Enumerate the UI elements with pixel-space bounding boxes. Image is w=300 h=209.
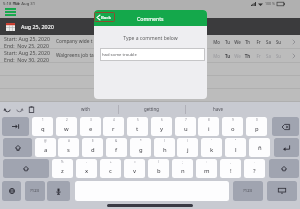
staticText: " <box>235 139 237 143</box>
button[interactable]: 3 <box>80 117 101 136</box>
staticText: n <box>181 167 185 175</box>
staticText: Su <box>274 39 283 45</box>
staticText: j <box>187 146 189 154</box>
staticText: Fr <box>254 39 263 45</box>
staticText: ? <box>253 167 256 175</box>
staticText: Tue Aug 31 <box>13 1 36 7</box>
button[interactable]: = <box>124 159 145 178</box>
button[interactable]: : <box>196 159 217 178</box>
button[interactable]: * <box>130 138 151 157</box>
staticText: Back <box>101 14 111 20</box>
staticText: 0 <box>256 118 258 122</box>
button[interactable]: # <box>58 138 79 157</box>
button[interactable]: ?123 <box>25 181 45 201</box>
staticText: Th <box>243 39 252 45</box>
button[interactable]: 9 <box>222 117 243 136</box>
button[interactable]: Mo <box>207 35 300 48</box>
button[interactable]: Change language <box>2 181 21 201</box>
button[interactable]: Enter <box>274 138 299 157</box>
staticText: $ <box>92 139 94 143</box>
staticText: e <box>89 125 93 133</box>
staticText: ) <box>187 139 188 143</box>
button[interactable]: had some trouble <box>100 48 205 61</box>
staticText: % <box>61 160 64 164</box>
button[interactable]: Shift <box>3 159 49 178</box>
staticText: Mo <box>212 53 221 59</box>
staticText: Start: Aug 25, 2020 <box>4 35 50 42</box>
staticText: We <box>233 39 242 45</box>
button[interactable]: 0 <box>246 117 267 136</box>
staticText: Sa <box>264 39 273 45</box>
button[interactable]: Shift <box>269 159 299 178</box>
button[interactable]: 1 <box>32 117 53 136</box>
staticText: = <box>134 160 136 164</box>
staticText: a <box>44 146 48 154</box>
button[interactable]: Caps lock <box>3 138 32 157</box>
staticText: had some trouble <box>102 52 137 58</box>
button[interactable]: % <box>52 159 73 178</box>
staticText: # <box>68 139 70 143</box>
button[interactable]: have <box>185 102 251 116</box>
button[interactable]: . <box>244 159 265 178</box>
button[interactable]: " <box>225 138 246 157</box>
button[interactable]: with <box>52 102 118 116</box>
staticText: . <box>254 160 255 164</box>
button[interactable]: Menu <box>5 8 16 16</box>
button[interactable]: Redo <box>16 106 23 113</box>
button[interactable]: ñ <box>249 138 270 157</box>
button[interactable]: / <box>148 159 169 178</box>
button[interactable]: getting <box>118 102 185 116</box>
button[interactable]: Mo <box>207 49 300 62</box>
button[interactable]: 2 <box>56 117 77 136</box>
button[interactable]: 5 <box>127 117 148 136</box>
staticText: b <box>157 167 161 175</box>
button[interactable]: 4 <box>103 117 124 136</box>
button[interactable]: - <box>76 159 97 178</box>
staticText: with <box>81 106 90 112</box>
staticText: Comments <box>137 15 164 22</box>
staticText: x <box>85 167 89 175</box>
staticText: * <box>140 139 142 143</box>
staticText: 3 <box>90 118 92 122</box>
staticText: ! <box>230 167 232 175</box>
staticText: ?123 <box>243 188 253 194</box>
button[interactable]: Backspace <box>272 117 299 136</box>
staticText: i <box>208 125 210 133</box>
button[interactable]: Tab <box>2 117 29 136</box>
button[interactable]: Start: Aug 25, 2020 <box>0 35 207 48</box>
button[interactable]: Back <box>94 12 115 22</box>
button[interactable]: , <box>220 159 241 178</box>
button[interactable]: Start: Aug 25, 2020 <box>0 49 207 62</box>
staticText: - <box>86 160 87 164</box>
button[interactable]: @ <box>35 138 56 157</box>
staticText: s <box>67 146 70 154</box>
button[interactable]: 6 <box>151 117 172 136</box>
button[interactable]: Undo <box>4 106 11 113</box>
staticText: ?123 <box>30 188 40 194</box>
button[interactable]: ( <box>154 138 175 157</box>
staticText: 6 <box>161 118 163 122</box>
staticText: d <box>91 146 95 154</box>
button[interactable]: & <box>106 138 127 157</box>
staticText: Company wide t <box>56 38 93 45</box>
button[interactable]: $ <box>82 138 103 157</box>
button[interactable]: ) <box>177 138 198 157</box>
staticText: End: Nov 30, 2020 <box>4 56 49 62</box>
staticText: We <box>233 53 242 59</box>
button[interactable]: ' <box>201 138 222 157</box>
button[interactable]: 7 <box>175 117 196 136</box>
button[interactable]: 8 <box>198 117 219 136</box>
button[interactable]: Hide keyboard <box>267 181 297 201</box>
staticText: Tu <box>223 53 232 59</box>
button[interactable]: ?123 <box>233 181 263 201</box>
button[interactable]: ; <box>172 159 193 178</box>
button[interactable]: Voice input <box>47 181 70 201</box>
button[interactable]: + <box>100 159 121 178</box>
button[interactable]: Paste <box>28 106 35 113</box>
staticText: End: Nov 25, 2020 <box>4 42 49 48</box>
staticText: t <box>136 125 139 133</box>
staticText: c <box>109 167 112 175</box>
staticText: Tu <box>223 39 232 45</box>
staticText: Fr <box>254 53 263 59</box>
